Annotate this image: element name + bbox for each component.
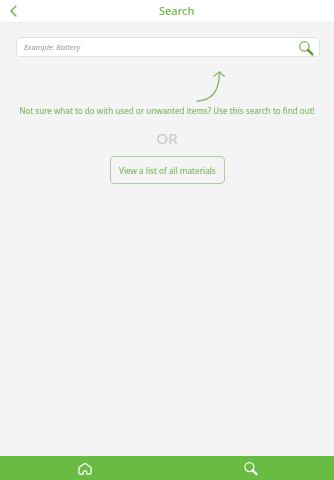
staticText: View a list of all materials — [119, 165, 216, 176]
staticText: Not sure what to do with used or unwante… — [12, 105, 322, 116]
button[interactable]: Home — [0, 456, 167, 480]
button[interactable]: Search — [167, 456, 334, 480]
staticText: Example: Battery — [24, 42, 81, 52]
staticText: OR — [0, 128, 334, 148]
button[interactable]: Back — [0, 0, 26, 22]
button[interactable]: View a list of all materials — [110, 156, 225, 184]
staticText: Search — [159, 3, 195, 18]
button[interactable]: Example: Battery — [16, 37, 320, 57]
